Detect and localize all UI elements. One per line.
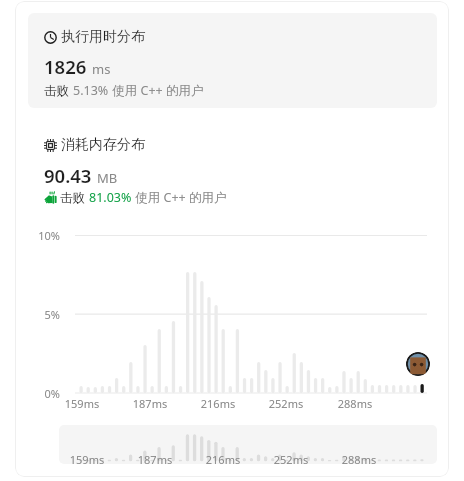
staticText: 击败 [44, 82, 73, 98]
staticText: 252ms [266, 396, 306, 411]
staticText: 187ms [130, 396, 170, 411]
staticText: MB [97, 169, 118, 187]
staticText: 187ms [135, 452, 175, 464]
staticText: 159ms [67, 452, 107, 464]
staticText: 0% [30, 386, 60, 401]
staticText: 90.43 [44, 163, 92, 188]
staticText: 消耗内存分布 [61, 136, 145, 154]
staticText: 159ms [62, 396, 102, 411]
staticText: 288ms [335, 396, 375, 411]
staticText: 10% [30, 228, 60, 243]
button[interactable] [28, 13, 437, 108]
staticText: 216ms [203, 452, 243, 464]
staticText: 1826 [44, 54, 87, 79]
staticText: 使用 C++ 的用户 [132, 189, 227, 205]
staticText: 使用 C++ 的用户 [109, 82, 204, 98]
staticText: 执行用时分布 [61, 28, 145, 46]
staticText: 216ms [198, 396, 238, 411]
staticText: 击败 [60, 189, 89, 205]
staticText: 5% [30, 307, 60, 322]
button[interactable]: 159ms [59, 425, 437, 464]
staticText: ms [92, 60, 111, 78]
button[interactable]: Your result [406, 352, 430, 376]
staticText: 252ms [271, 452, 311, 464]
staticText: 288ms [339, 452, 379, 464]
staticText: 5.13% [73, 82, 109, 98]
staticText: 81.03% [89, 189, 132, 205]
